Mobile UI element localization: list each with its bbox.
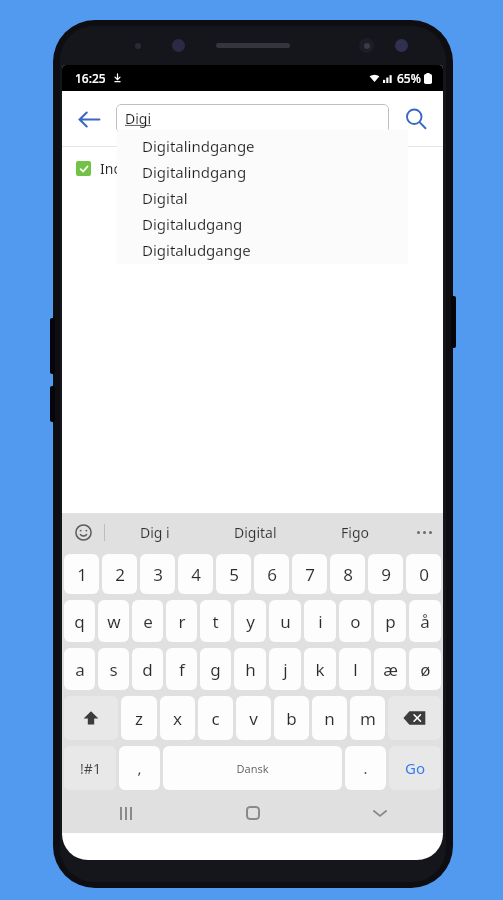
button[interactable]: 6 [254, 554, 289, 594]
button[interactable]: h [234, 648, 266, 690]
staticText: 8 [343, 563, 353, 586]
button[interactable]: 5 [216, 554, 251, 594]
button[interactable]: Digi [116, 104, 389, 133]
button[interactable]: Digitalindgang [117, 159, 408, 185]
button[interactable]: 1 [64, 554, 99, 594]
staticText: Go [405, 758, 425, 778]
button[interactable]: Digital [117, 185, 408, 211]
button[interactable]: 0 [406, 554, 441, 594]
button[interactable]: Digitaludgange [117, 237, 408, 263]
button[interactable]: Back [62, 92, 116, 146]
button[interactable]: Include [62, 147, 443, 189]
button[interactable]: j [269, 648, 301, 690]
staticText: 7 [305, 563, 315, 586]
button[interactable]: Backspace [388, 696, 441, 740]
staticText: Include [100, 159, 149, 178]
button[interactable]: f [166, 648, 197, 690]
staticText: Dansk [236, 761, 269, 776]
staticText: d [142, 658, 153, 681]
button[interactable]: y [234, 600, 266, 642]
button[interactable]: q [64, 600, 95, 642]
staticText: y [246, 610, 255, 633]
button[interactable]: 2 [102, 554, 137, 594]
button[interactable]: g [200, 648, 231, 690]
button[interactable]: i [304, 600, 336, 642]
button[interactable]: 3 [140, 554, 175, 594]
staticText: !#1 [80, 759, 101, 778]
staticText: Digitaludgang [142, 214, 243, 234]
staticText: u [280, 610, 291, 633]
button[interactable]: o [339, 600, 371, 642]
button[interactable]: w [98, 600, 129, 642]
button[interactable]: Hide keyboard [316, 793, 443, 833]
staticText: s [109, 658, 118, 681]
staticText: Digi [125, 109, 152, 128]
staticText: t [212, 610, 219, 633]
button[interactable]: Dansk [163, 746, 342, 790]
staticText: i [318, 610, 323, 633]
staticText: z [135, 707, 143, 730]
button[interactable]: 9 [368, 554, 403, 594]
staticText: o [350, 610, 361, 633]
button[interactable]: r [166, 600, 197, 642]
staticText: c [211, 707, 220, 730]
button[interactable]: Digital [205, 513, 305, 551]
button[interactable]: . [345, 746, 386, 790]
button[interactable]: k [304, 648, 336, 690]
button[interactable]: 4 [178, 554, 213, 594]
button[interactable]: æ [374, 648, 406, 690]
button[interactable]: d [132, 648, 163, 690]
staticText: v [249, 707, 258, 730]
staticText: Figo [341, 523, 369, 542]
staticText: a [75, 658, 85, 681]
button[interactable]: a [64, 648, 95, 690]
button[interactable]: v [236, 696, 271, 740]
button[interactable]: Figo [305, 513, 405, 551]
button[interactable]: Emoji [62, 513, 104, 551]
button[interactable]: s [98, 648, 129, 690]
staticText: Digitaludgange [142, 240, 251, 260]
staticText: æ [383, 658, 398, 681]
staticText: l [353, 658, 358, 681]
button[interactable]: Digitaludgang [117, 211, 408, 237]
button[interactable]: n [312, 696, 347, 740]
button[interactable]: ø [409, 648, 441, 690]
staticText: Digitalindgange [142, 136, 255, 156]
button[interactable]: c [198, 696, 233, 740]
staticText: x [173, 707, 182, 730]
button[interactable]: l [339, 648, 371, 690]
button[interactable]: Search [389, 92, 443, 146]
staticText: q [74, 610, 85, 633]
staticText: w [107, 610, 121, 633]
button[interactable]: 8 [330, 554, 365, 594]
button[interactable]: Dig i [105, 513, 205, 551]
button[interactable]: t [200, 600, 231, 642]
button[interactable]: x [160, 696, 195, 740]
button[interactable]: Shift [64, 696, 118, 740]
staticText: å [420, 610, 430, 633]
staticText: 5 [229, 563, 239, 586]
staticText: p [385, 610, 396, 633]
button[interactable]: p [374, 600, 406, 642]
staticText: 0 [419, 563, 429, 586]
button[interactable]: å [409, 600, 441, 642]
button[interactable]: , [119, 746, 160, 790]
staticText: ø [420, 658, 431, 681]
staticText: k [315, 658, 325, 681]
button[interactable]: More suggestions [405, 513, 443, 551]
staticText: e [143, 610, 153, 633]
button[interactable]: m [350, 696, 385, 740]
button[interactable]: Digitalindgange [117, 133, 408, 159]
button[interactable]: b [274, 696, 309, 740]
staticText: 65% [397, 70, 421, 86]
button[interactable]: z [121, 696, 157, 740]
button[interactable]: Home [189, 793, 316, 833]
button[interactable]: e [132, 600, 163, 642]
button[interactable]: Recents [62, 793, 189, 833]
button[interactable]: !#1 [64, 746, 116, 790]
button[interactable]: 7 [292, 554, 327, 594]
staticText: b [286, 707, 297, 730]
button[interactable]: Go [389, 746, 441, 790]
staticText: Digital [142, 188, 188, 208]
button[interactable]: u [269, 600, 301, 642]
